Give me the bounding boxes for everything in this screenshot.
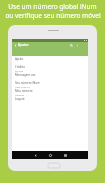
staticText: Verificar [15,93,25,96]
staticText: Logout [15,97,25,101]
button[interactable]: Seu número iNum [12,80,88,88]
staticText: Ajuda [15,57,23,61]
staticText: R$ 0,00 [15,69,24,72]
staticText: Crédito [15,65,25,69]
staticText: +883 5100 12 [15,85,30,88]
button[interactable]: Crédito [12,64,88,72]
button[interactable]: Ajuda [12,56,88,64]
button[interactable]: Recent apps [62,152,68,158]
staticText: Ajustes [18,43,29,47]
staticText: Seu número iNum [15,81,40,85]
button[interactable]: Home [47,152,53,158]
button[interactable]: Navigate up [12,42,18,48]
button[interactable]: Logout [12,96,88,104]
button[interactable]: Mensagem voz [12,72,88,80]
staticText: Use um número global iNum [8,2,97,11]
button[interactable]: Search [68,42,74,48]
staticText: ou verifique seu número móvel [5,11,101,20]
staticText: Meu número [15,89,33,93]
button[interactable]: More options [74,42,80,48]
button[interactable]: Back [32,152,38,158]
staticText: Mensagem voz [15,73,36,77]
button[interactable]: Meu número [12,88,88,96]
